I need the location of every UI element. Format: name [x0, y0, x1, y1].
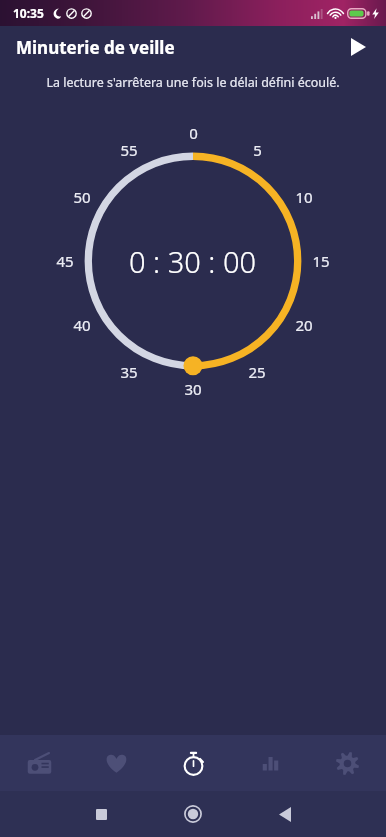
button[interactable]: Home [147, 791, 239, 837]
staticText: 20 [295, 315, 313, 335]
button[interactable]: Start sleep timer [338, 27, 378, 67]
staticText: 25 [248, 362, 266, 382]
staticText: 45 [56, 251, 74, 271]
staticText: 55 [120, 140, 138, 160]
staticText: 30 [184, 379, 202, 399]
staticText: 50 [73, 187, 91, 207]
button[interactable]: Settings [309, 735, 386, 791]
staticText: 0 : 30 : 00 [129, 242, 257, 281]
button[interactable]: Statistics [232, 735, 309, 791]
staticText: 40 [73, 315, 91, 335]
staticText: La lecture s'arrêtera une fois le délai … [46, 74, 340, 91]
button[interactable]: Back [239, 791, 331, 837]
staticText: 5 [253, 140, 262, 160]
staticText: 0 [189, 123, 198, 143]
staticText: 10 [295, 187, 313, 207]
button[interactable]: Sleep timer [155, 735, 232, 791]
staticText: 35 [120, 362, 138, 382]
button[interactable]: Recent apps [55, 791, 147, 837]
button[interactable]: Sleep timer dial, 30 minutes [57, 125, 329, 397]
staticText: 10:35 [13, 5, 44, 21]
button[interactable]: Radio [0, 735, 78, 791]
staticText: Minuterie de veille [16, 36, 175, 59]
staticText: 15 [312, 251, 330, 271]
button[interactable]: Favourites [78, 735, 155, 791]
